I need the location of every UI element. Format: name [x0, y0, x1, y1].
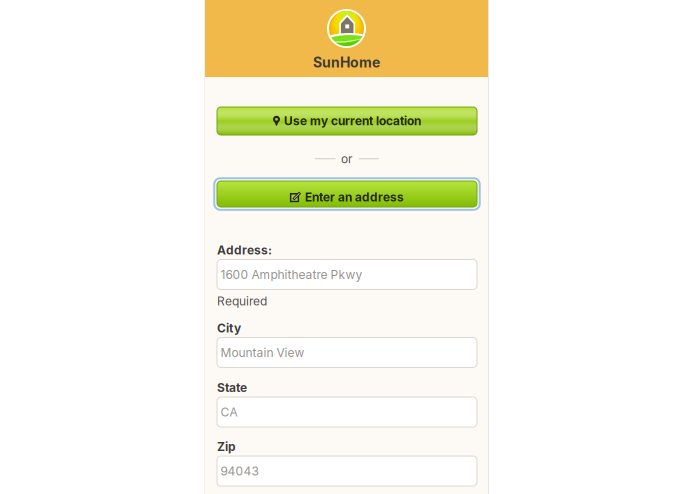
staticText: Enter an address [305, 190, 404, 204]
button[interactable]: State [217, 397, 477, 427]
staticText: Use my current location [284, 114, 421, 128]
button[interactable]: Address: [217, 259, 477, 289]
staticText: Required [217, 294, 267, 308]
button[interactable]: Use my current location [217, 107, 477, 135]
button[interactable]: Zip [217, 456, 477, 486]
staticText: Mountain View [220, 345, 304, 360]
staticText: City [217, 321, 241, 335]
staticText: CA [220, 405, 237, 419]
staticText: SunHome [313, 54, 380, 71]
staticText: or [341, 151, 353, 166]
staticText: 1600 Amphitheatre Pkwy [220, 267, 362, 282]
staticText: 94043 [220, 464, 258, 478]
button[interactable]: City [217, 337, 477, 367]
staticText: Zip [217, 439, 236, 454]
staticText: State [217, 380, 247, 395]
button[interactable]: Enter an address [217, 181, 477, 207]
staticText: Address: [217, 243, 272, 257]
